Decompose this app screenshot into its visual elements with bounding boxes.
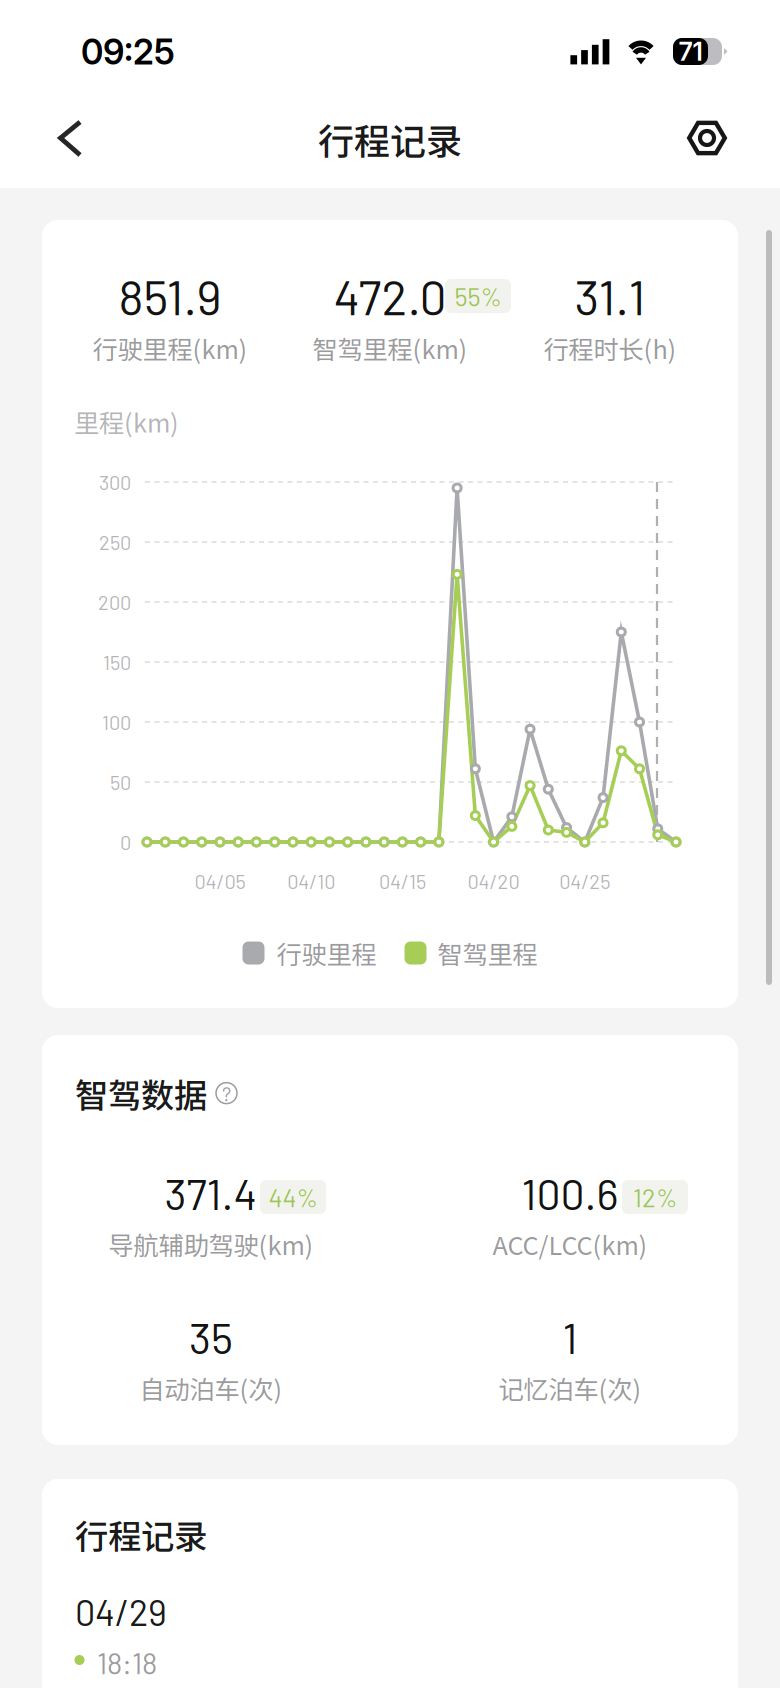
staticText: 71 <box>678 36 702 67</box>
staticText: 导航辅助驾驶(km) <box>108 1226 313 1262</box>
staticText: 行程记录 <box>318 113 462 165</box>
staticText: 31.1 <box>574 267 645 325</box>
staticText: 行驶里程 <box>276 935 376 971</box>
button[interactable]: Settings <box>663 90 751 186</box>
staticText: 472.0 <box>333 267 446 325</box>
staticText: 851.9 <box>118 267 221 325</box>
staticText: 200 <box>98 590 131 614</box>
staticText: 智驾里程(km) <box>312 330 467 366</box>
staticText: 里程(km) <box>74 403 179 440</box>
staticText: ? <box>222 1081 231 1105</box>
staticText: 44% <box>268 1182 317 1212</box>
staticText: 300 <box>99 470 131 494</box>
staticText: 35 <box>189 1311 233 1363</box>
button[interactable]: 04/29 <box>42 1583 738 1688</box>
staticText: 12% <box>633 1182 677 1212</box>
staticText: 09:25 <box>81 31 175 73</box>
staticText: 记忆泊车(次) <box>498 1370 641 1406</box>
staticText: 150 <box>103 650 131 674</box>
staticText: ACC/LCC(km) <box>492 1226 647 1262</box>
staticText: 18:18 <box>97 1645 157 1680</box>
staticText: 100 <box>102 710 131 734</box>
staticText: 智驾里程 <box>437 935 537 971</box>
staticText: 04/10 <box>287 869 335 893</box>
staticText: 55% <box>454 281 501 311</box>
staticText: 自动泊车(次) <box>139 1370 282 1406</box>
staticText: 1 <box>562 1311 577 1363</box>
staticText: 0 <box>120 830 131 854</box>
staticText: 04/25 <box>559 869 610 893</box>
staticText: 04/05 <box>194 869 245 893</box>
staticText: 04/29 <box>75 1590 167 1633</box>
button[interactable]: Back <box>0 90 102 186</box>
staticText: 行程记录 <box>75 1510 207 1558</box>
staticText: 100.6 <box>521 1167 618 1219</box>
staticText: 371.4 <box>164 1167 257 1219</box>
staticText: 行程时长(h) <box>543 330 676 366</box>
staticText: 04/15 <box>379 869 426 893</box>
staticText: 04/20 <box>468 869 520 893</box>
staticText: 行驶里程(km) <box>92 330 247 366</box>
staticText: 50 <box>110 770 131 794</box>
staticText: 250 <box>99 530 131 554</box>
staticText: 智驾数据 <box>75 1069 207 1117</box>
